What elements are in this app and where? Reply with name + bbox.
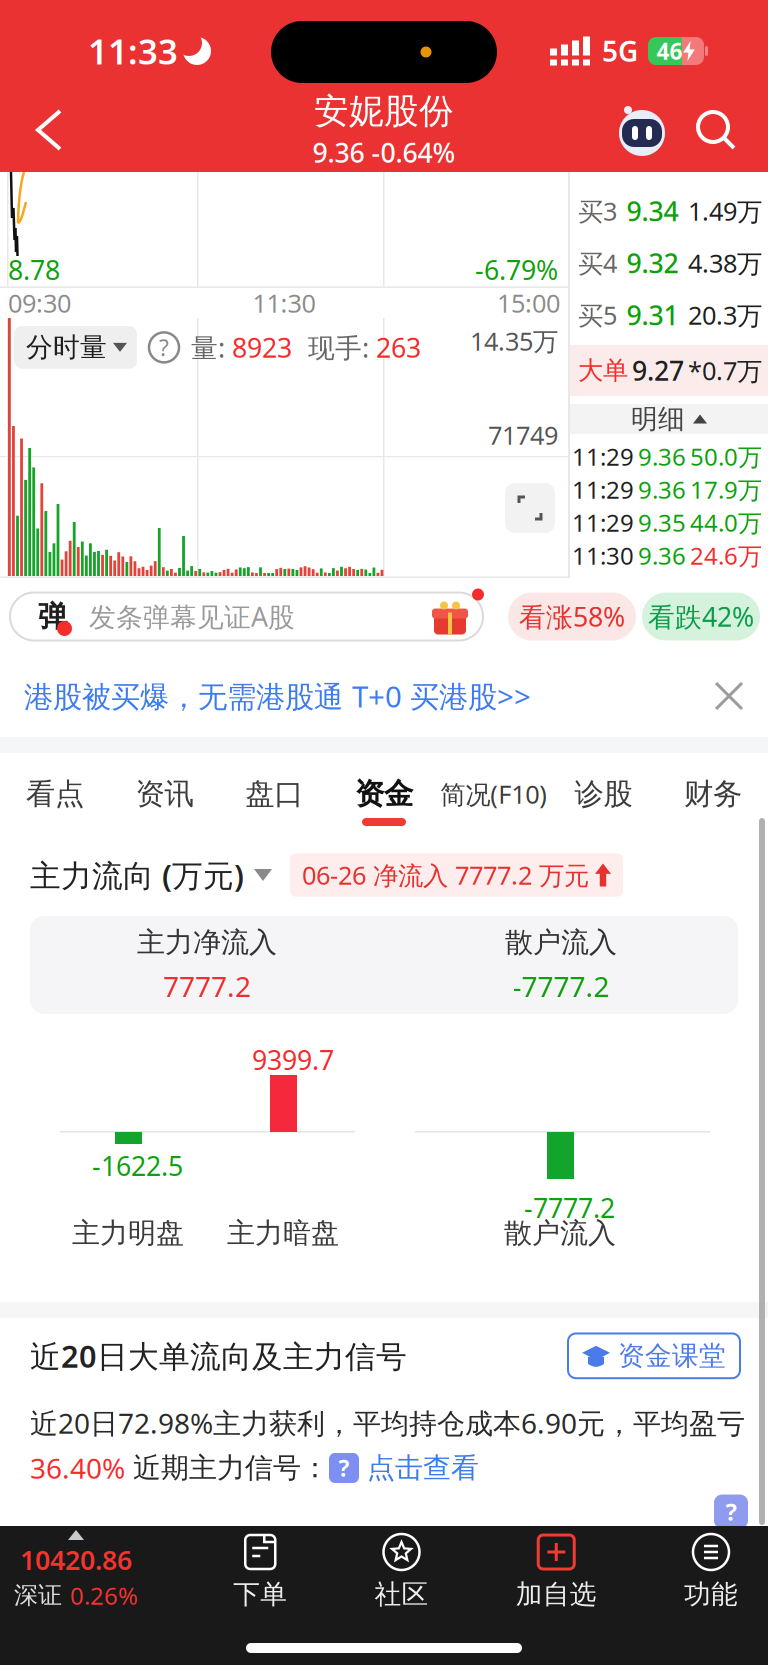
staticText: 看点 xyxy=(26,776,84,812)
button[interactable]: 功能 xyxy=(684,1526,738,1611)
button[interactable]: Help xyxy=(137,332,179,362)
staticText: 9.36 xyxy=(638,540,686,571)
staticText: 诊股 xyxy=(574,776,632,812)
staticText: 06-26 净流入 7777.2 万元 xyxy=(302,858,589,892)
staticText: 主力流向 (万元) xyxy=(30,855,244,895)
button[interactable]: 下单 xyxy=(233,1526,287,1611)
button[interactable]: 10420.86 xyxy=(6,1526,146,1611)
staticText: 买3 xyxy=(578,194,617,228)
button[interactable]: 明细 xyxy=(570,404,768,434)
staticText: 1.49万 xyxy=(688,194,762,228)
staticText: 11:30 xyxy=(252,286,315,320)
staticText: 盘口 xyxy=(245,776,303,812)
staticText: 港股被买爆，无需港股通 T+0 买港股>> xyxy=(24,676,531,715)
staticText: 下单 xyxy=(233,1578,287,1611)
staticText: 散户流入 xyxy=(504,1216,616,1250)
button[interactable]: 财务 xyxy=(658,753,768,835)
button[interactable]: 资讯 xyxy=(110,753,219,835)
staticText: 看跌42% xyxy=(648,599,754,634)
staticText: 11:30 xyxy=(572,540,634,571)
staticText: 09:30 xyxy=(8,286,71,320)
staticText: 71749 xyxy=(488,418,558,452)
staticText: 9.35 xyxy=(638,507,686,538)
button[interactable]: 主力流向 (万元) xyxy=(30,855,272,895)
staticText: 深证 xyxy=(14,1581,62,1610)
staticText: 36.40% xyxy=(30,1449,125,1487)
button[interactable]: 资金 xyxy=(329,753,439,835)
button[interactable]: 资金课堂 xyxy=(568,1333,740,1378)
staticText: 15:00 xyxy=(497,286,560,320)
button[interactable]: Close banner xyxy=(716,683,768,709)
staticText: 主力暗盘 xyxy=(227,1216,339,1250)
staticText: ? xyxy=(159,332,169,362)
button[interactable]: 简况(F10) xyxy=(439,753,548,835)
staticText: 主力净流入 xyxy=(137,925,277,960)
button[interactable]: 诊股 xyxy=(548,753,658,835)
staticText: 9399.7 xyxy=(252,1042,334,1077)
staticText: 近期主力信号： xyxy=(125,1451,329,1485)
staticText: 资金 xyxy=(355,776,413,812)
staticText: 分时量 xyxy=(26,331,107,364)
staticText: 9.36 xyxy=(638,441,686,472)
staticText: 50.0万 xyxy=(690,441,762,472)
staticText: 功能 xyxy=(684,1578,738,1611)
staticText: 社区 xyxy=(374,1578,428,1611)
button[interactable]: 分时量 xyxy=(14,326,137,369)
staticText: 11:29 xyxy=(572,474,634,505)
staticText: 近20日大单流向及主力信号 xyxy=(30,1335,407,1376)
staticText: 发条弹幕见证A股 xyxy=(89,599,295,634)
button[interactable]: 社区 xyxy=(374,1526,428,1611)
staticText: 近20日72.98%主力获利，平均持仓成本6.90元，平均盈亏 xyxy=(30,1404,745,1441)
staticText: 买5 xyxy=(578,298,617,332)
staticText: 财务 xyxy=(684,776,742,812)
button[interactable]: Help xyxy=(714,1495,748,1529)
staticText: 安妮股份 xyxy=(314,90,454,133)
button[interactable]: 港股被买爆，无需港股通 T+0 买港股>> xyxy=(0,676,531,715)
button[interactable]: 盘口 xyxy=(219,753,329,835)
button[interactable]: Back xyxy=(0,111,80,149)
staticText: 17.9万 xyxy=(690,474,762,505)
staticText: 46 xyxy=(656,36,682,66)
staticText: *0.7万 xyxy=(688,354,762,387)
button[interactable]: AI assistant xyxy=(616,104,668,156)
button[interactable]: 看跌42% xyxy=(642,592,760,640)
button[interactable]: 看涨58% xyxy=(508,592,636,640)
button[interactable]: 看点 xyxy=(0,753,110,835)
staticText: 加自选 xyxy=(516,1578,597,1611)
staticText: 4.38万 xyxy=(688,246,762,280)
staticText: -1622.5 xyxy=(92,1148,183,1183)
staticText: 现手: xyxy=(308,330,376,365)
staticText: 简况(F10) xyxy=(440,777,547,811)
staticText: 量: xyxy=(191,330,232,365)
staticText: 大单 xyxy=(578,355,628,386)
staticText: -7777.2 xyxy=(524,1190,615,1225)
staticText: 11:29 xyxy=(572,441,634,472)
staticText: 散户流入 xyxy=(505,925,617,960)
staticText: 看涨58% xyxy=(519,599,625,634)
staticText: 9.27 xyxy=(632,353,684,388)
button[interactable]: Search xyxy=(668,108,768,152)
staticText: -6.79% xyxy=(475,252,558,287)
staticText: 14.35万 xyxy=(470,324,558,358)
button[interactable]: 加自选 xyxy=(516,1526,597,1611)
button[interactable]: Help xyxy=(329,1453,359,1483)
staticText: 24.6万 xyxy=(690,540,762,571)
staticText: 8923 xyxy=(232,330,292,365)
staticText: 20.3万 xyxy=(688,298,762,332)
staticText: 9.34 xyxy=(626,193,678,229)
staticText: 点击查看 xyxy=(359,1451,479,1485)
staticText: 9.36 -0.64% xyxy=(312,135,455,170)
staticText: ? xyxy=(338,1453,349,1483)
button[interactable]: 06-26 净流入 7777.2 万元 xyxy=(290,853,623,897)
staticText: 11:33 xyxy=(88,28,178,74)
staticText: 9.31 xyxy=(626,297,678,333)
staticText: 9.32 xyxy=(626,245,678,281)
staticText: 买4 xyxy=(578,246,617,280)
button[interactable]: 发弹幕 xyxy=(10,592,483,640)
staticText: 弹 xyxy=(38,598,67,634)
staticText: 44.0万 xyxy=(690,507,762,538)
staticText: 0.26% xyxy=(70,1579,138,1611)
button[interactable]: Expand chart xyxy=(505,483,555,533)
staticText: 明细 xyxy=(631,403,685,435)
button[interactable]: 点击查看 xyxy=(359,1451,479,1485)
